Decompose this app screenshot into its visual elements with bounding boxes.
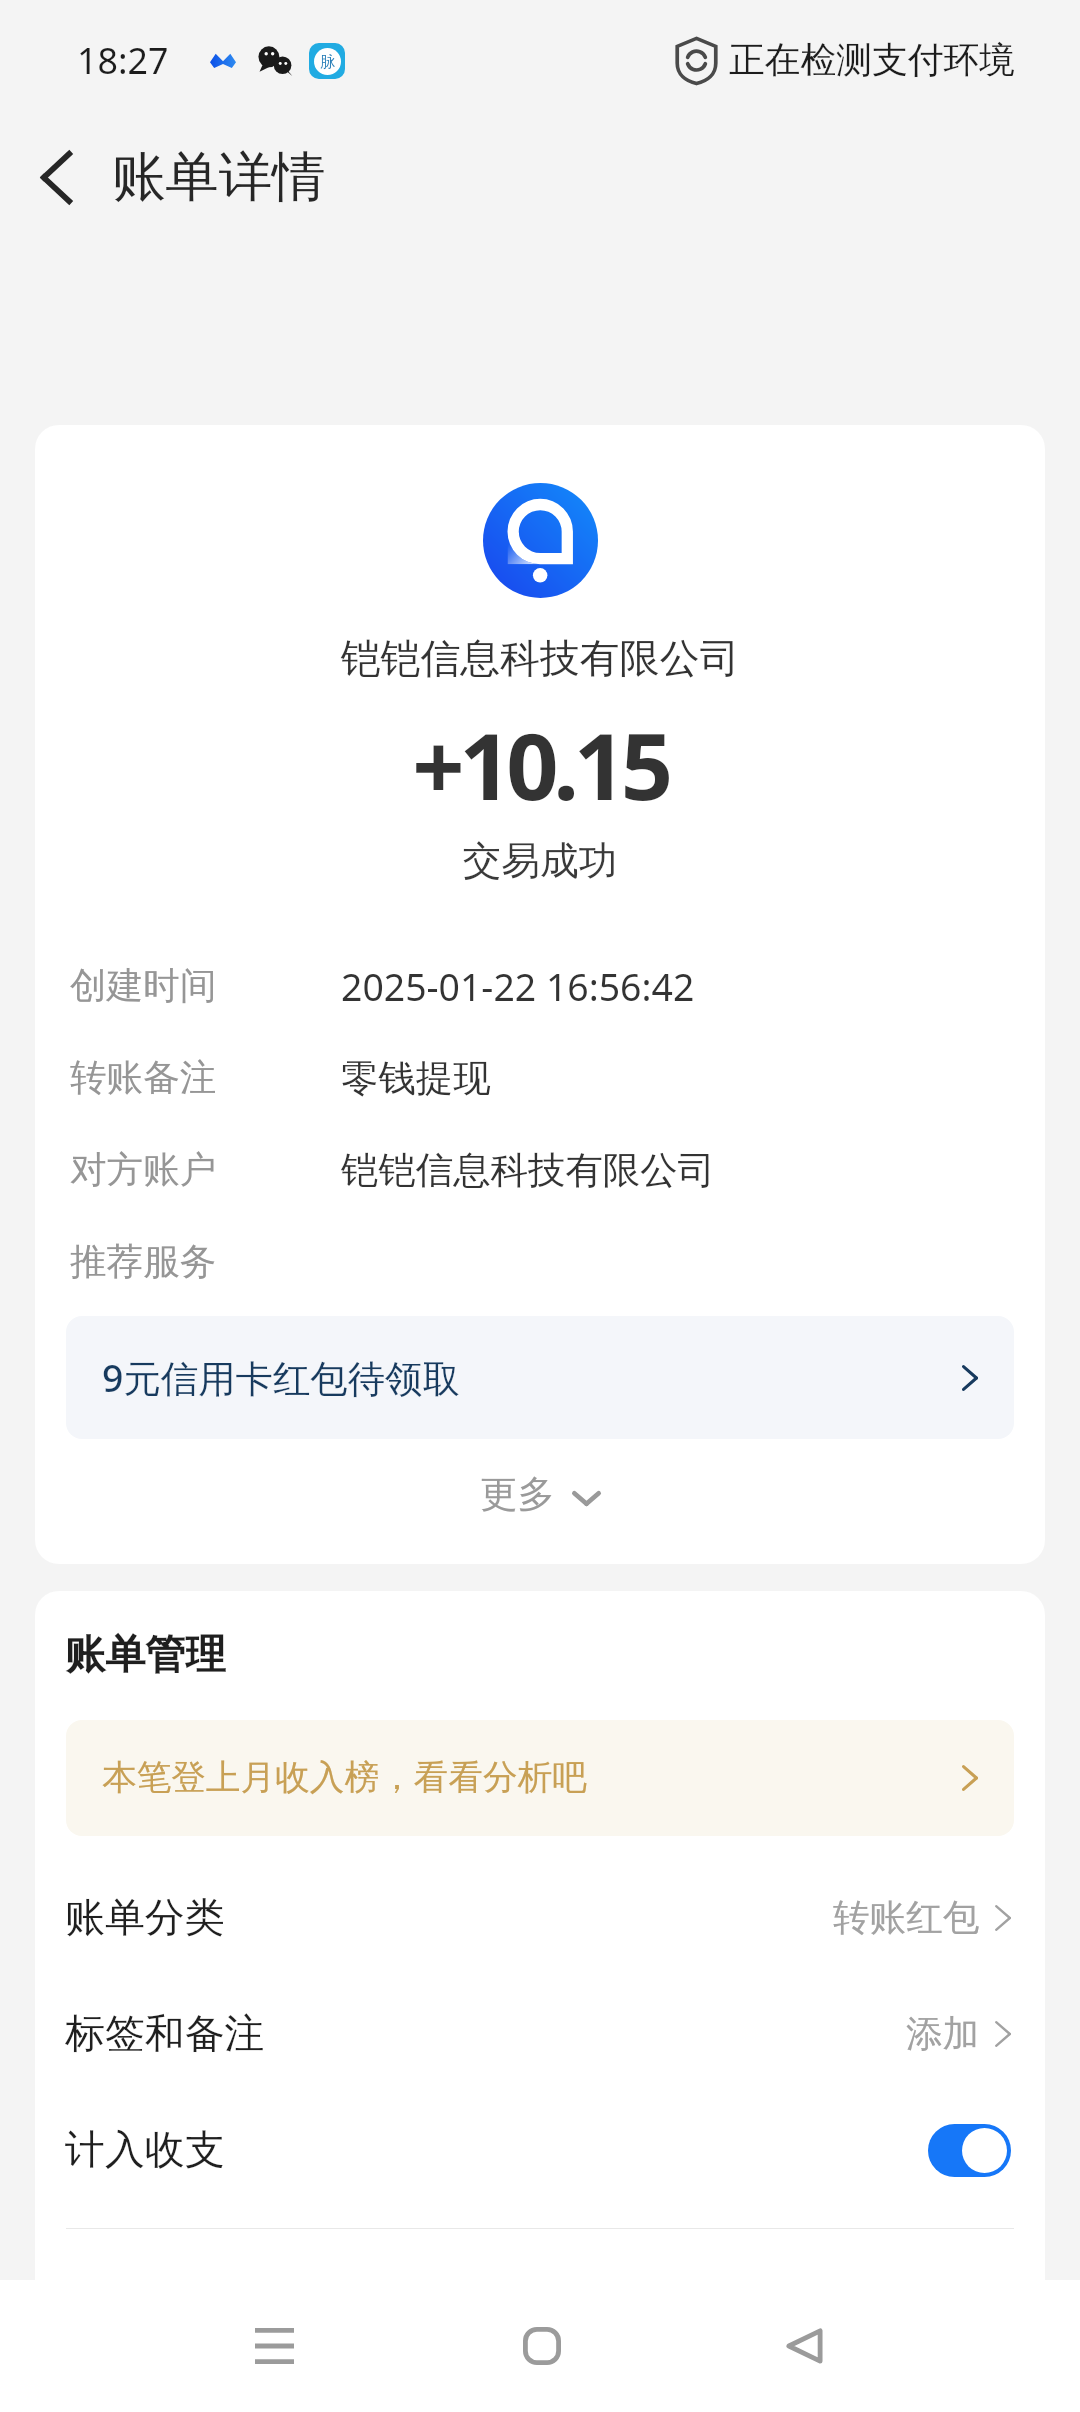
button[interactable]: 计入收支 <box>35 2092 1045 2208</box>
staticText: 账单分类 <box>65 1893 225 1943</box>
staticText: 对方账户 <box>70 1147 217 1193</box>
staticText: 9元信用卡红包待领取 <box>102 1352 460 1403</box>
button[interactable]: Recent apps <box>252 2324 296 2368</box>
button[interactable]: Back <box>782 2324 826 2368</box>
staticText: 脉 <box>320 52 336 71</box>
staticText: 18:27 <box>77 36 169 85</box>
staticText: 账单管理 <box>65 1629 226 1680</box>
staticText: 推荐服务 <box>70 1239 217 1285</box>
staticText: 本笔登上月收入榜，看看分析吧 <box>102 1756 587 1800</box>
staticText: 转账红包 <box>833 1895 980 1941</box>
staticText: 交易成功 <box>35 837 1045 886</box>
staticText: 正在检测支付环境 <box>729 38 1015 83</box>
staticText: 账单详情 <box>112 144 326 211</box>
staticText: 标签和备注 <box>65 2009 265 2059</box>
staticText: +10.15 <box>35 702 1045 827</box>
staticText: 铠铠信息科技有限公司 <box>341 1147 715 1194</box>
button[interactable]: 9元信用卡红包待领取 <box>66 1316 1014 1439</box>
button[interactable]: Home <box>520 2324 564 2368</box>
button[interactable]: 更多 <box>35 1458 1045 1530</box>
button[interactable]: 本笔登上月收入榜，看看分析吧 <box>66 1720 1014 1836</box>
staticText: 2025-01-22 16:56:42 <box>341 961 695 1012</box>
staticText: 创建时间 <box>70 963 217 1009</box>
staticText: 添加 <box>906 2011 980 2057</box>
button[interactable]: 标签和备注 <box>35 1976 1045 2092</box>
button[interactable]: Back <box>0 107 112 247</box>
staticText: 零钱提现 <box>341 1055 491 1102</box>
staticText: 铠铠信息科技有限公司 <box>35 634 1045 684</box>
staticText: 转账备注 <box>70 1055 217 1101</box>
staticText: 计入收支 <box>65 2125 225 2175</box>
staticText: 更多 <box>480 1471 555 1518</box>
button[interactable]: 账单分类 <box>35 1860 1045 1976</box>
